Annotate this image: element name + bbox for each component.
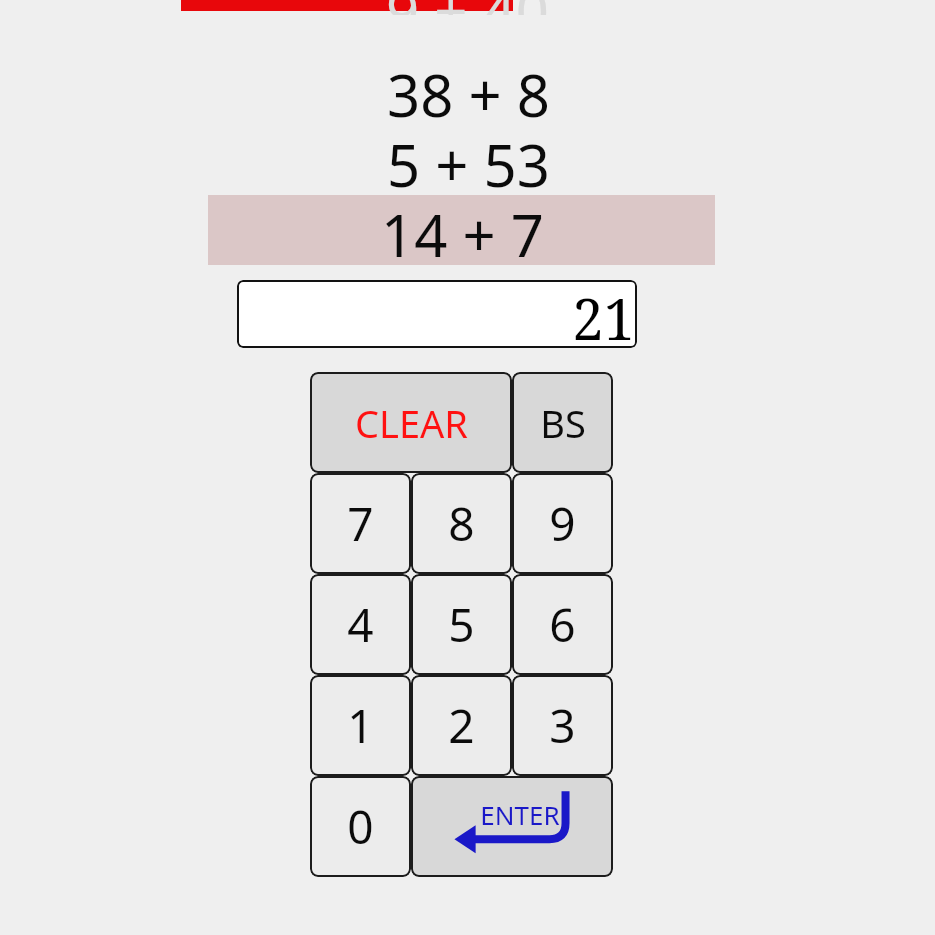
staticText: 9 + 40 <box>386 0 549 15</box>
button[interactable]: 1 <box>310 675 411 776</box>
staticText: ENTER <box>480 797 560 832</box>
staticText: 8 <box>448 492 475 555</box>
button[interactable]: 14 + 7 <box>208 195 715 265</box>
staticText: 1 <box>347 694 374 757</box>
button[interactable]: 0 <box>310 776 411 877</box>
button[interactable]: 5 + 53 <box>0 125 935 195</box>
button[interactable]: 21 <box>237 280 637 348</box>
staticText: 5 + 53 <box>387 125 550 195</box>
button[interactable]: 9 <box>512 473 613 574</box>
staticText: 14 + 7 <box>381 195 544 265</box>
button[interactable]: Enter <box>411 776 613 877</box>
staticText: 7 <box>347 492 374 555</box>
staticText: 38 + 8 <box>387 55 550 125</box>
staticText: 5 <box>448 593 475 656</box>
button[interactable]: 5 <box>411 574 512 675</box>
button[interactable]: BS <box>512 372 613 473</box>
staticText: BS <box>540 397 586 449</box>
button[interactable]: 6 <box>512 574 613 675</box>
staticText: 2 <box>448 694 475 757</box>
button[interactable]: CLEAR <box>310 372 512 473</box>
button[interactable]: 8 <box>411 473 512 574</box>
button[interactable]: 38 + 8 <box>0 55 935 125</box>
button[interactable]: 7 <box>310 473 411 574</box>
staticText: 9 <box>549 492 576 555</box>
staticText: 6 <box>549 593 576 656</box>
staticText: 21 <box>572 280 635 348</box>
button[interactable]: 2 <box>411 675 512 776</box>
staticText: 3 <box>549 694 576 757</box>
staticText: 0 <box>347 795 374 858</box>
button[interactable]: 4 <box>310 574 411 675</box>
button[interactable]: 3 <box>512 675 613 776</box>
staticText: 4 <box>347 593 374 656</box>
staticText: CLEAR <box>355 397 468 449</box>
